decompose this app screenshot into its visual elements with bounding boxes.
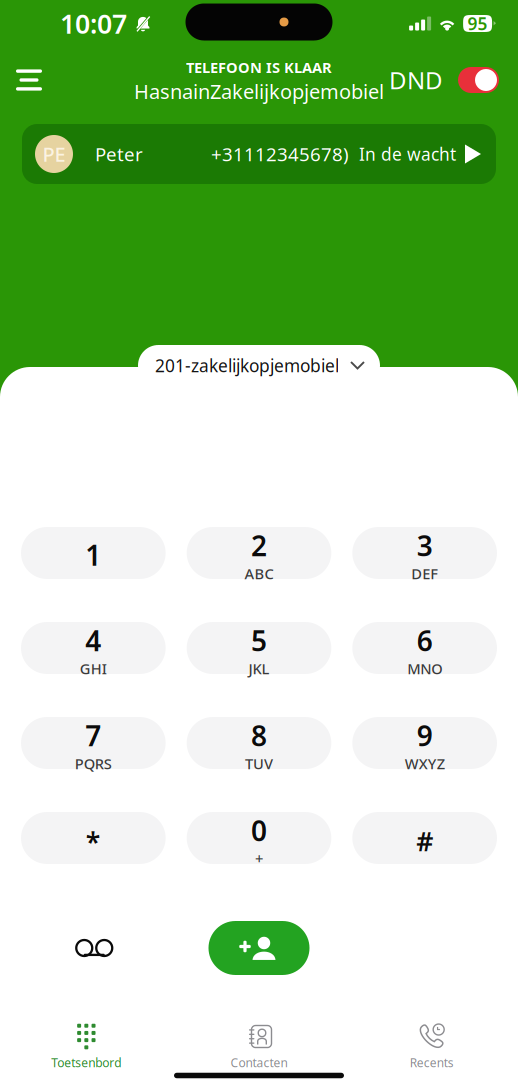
- staticText: Contacten: [230, 1054, 287, 1070]
- button[interactable]: 9: [352, 717, 497, 769]
- staticText: TELEFOON IS KLAAR: [186, 57, 332, 77]
- staticText: 4: [85, 622, 101, 659]
- staticText: +31112345678): [211, 142, 349, 166]
- staticText: PQRS: [75, 754, 112, 773]
- staticText: HasnainZakelijkopjemobiel: [134, 78, 384, 105]
- button[interactable]: 3: [352, 527, 497, 579]
- button[interactable]: *: [21, 812, 166, 864]
- staticText: 2: [251, 527, 267, 564]
- button[interactable]: 6: [352, 622, 497, 674]
- button[interactable]: 0: [187, 812, 331, 864]
- staticText: *: [86, 824, 101, 860]
- button[interactable]: Recents: [345, 1018, 518, 1074]
- staticText: 7: [85, 717, 101, 754]
- staticText: +: [255, 849, 263, 868]
- staticText: 3: [417, 527, 433, 564]
- button[interactable]: Do not disturb: [389, 55, 518, 105]
- button[interactable]: 2: [187, 527, 331, 579]
- staticText: WXYZ: [405, 754, 445, 773]
- button[interactable]: #: [352, 812, 497, 864]
- staticText: JKL: [248, 659, 269, 678]
- button[interactable]: Contacten: [173, 1018, 345, 1074]
- staticText: In de wacht: [359, 142, 456, 165]
- staticText: 9: [417, 717, 433, 754]
- button[interactable]: PE: [22, 124, 496, 184]
- staticText: #: [416, 823, 433, 859]
- staticText: ABC: [244, 564, 273, 583]
- button[interactable]: 201-zakelijkopjemobiel: [138, 345, 380, 386]
- staticText: PE: [42, 141, 65, 167]
- staticText: 8: [251, 717, 267, 754]
- button[interactable]: Toetsenbord: [0, 1018, 173, 1074]
- staticText: 5: [251, 622, 267, 659]
- staticText: 6: [417, 622, 433, 659]
- button[interactable]: Menu: [0, 55, 66, 105]
- button[interactable]: 7: [21, 717, 166, 769]
- staticText: 0: [251, 812, 267, 849]
- staticText: 95: [468, 12, 488, 35]
- staticText: 10:07: [60, 6, 127, 41]
- staticText: Toetsenbord: [51, 1054, 121, 1070]
- staticText: Peter: [95, 142, 143, 166]
- button[interactable]: 5: [187, 622, 331, 674]
- button[interactable]: 8: [187, 717, 331, 769]
- staticText: Recents: [410, 1054, 454, 1070]
- staticText: 201-zakelijkopjemobiel: [155, 354, 339, 377]
- staticText: TUV: [245, 754, 273, 773]
- button[interactable]: 1: [21, 527, 166, 579]
- staticText: DND: [389, 64, 443, 96]
- button[interactable]: Voicemail: [21, 921, 187, 975]
- staticText: 1: [85, 536, 101, 574]
- staticText: DEF: [411, 564, 438, 583]
- staticText: GHI: [80, 659, 107, 678]
- button[interactable]: 4: [21, 622, 166, 674]
- button[interactable]: Add contact: [208, 921, 309, 975]
- staticText: MNO: [407, 659, 442, 678]
